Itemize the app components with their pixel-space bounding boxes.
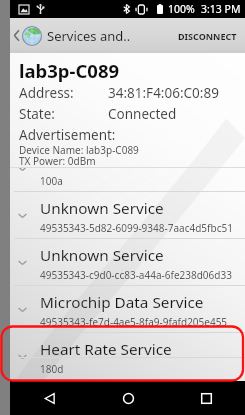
button[interactable]: Unknown Service [10,239,245,286]
staticText: 34:81:F4:06:C0:89 [108,84,219,102]
staticText: TX Power: 0dBm [19,154,96,168]
staticText: Microchip Data Service [40,292,204,313]
staticText: Unknown Service [40,198,164,219]
button[interactable]: Unknown Service [10,192,245,239]
staticText: 49535343-fe7d-4ae5-8fa9-9fafd205e455 [40,315,228,329]
staticText: Device Name: lab3p-C089 [19,143,139,157]
staticText: 180d [40,362,64,376]
staticText: 100a [40,174,63,188]
staticText: 3:13 PM [201,2,241,16]
staticText: 49535343-5d82-6099-9348-7aac4d5fbc51 [40,221,233,235]
staticText: Services and.. [47,27,131,45]
button[interactable]: DISCONNECT [168,18,245,53]
button[interactable]: Recent apps [167,381,245,415]
staticText: Connected [108,105,177,123]
button[interactable]: Navigate up [10,18,135,53]
staticText: Heart Rate Service [40,339,172,360]
button[interactable]: Home [89,381,167,415]
button[interactable]: Back [10,381,89,415]
staticText: lab3p-C089 [19,58,120,83]
staticText: 100% [168,2,195,16]
staticText: 49535343-c9d0-cc83-a44a-6fe238d06d33 [40,268,232,282]
other: Navigate up [13,29,20,42]
button[interactable]: Microchip Data Service [10,286,245,333]
staticText: Unknown Service [40,245,164,266]
button[interactable]: 100a [10,168,245,192]
button[interactable]: Heart Rate Service [10,333,245,358]
staticText: Advertisement: [19,126,116,144]
staticText: State: [19,105,55,123]
staticText: DISCONNECT [178,30,237,42]
staticText: Address: [19,84,74,102]
